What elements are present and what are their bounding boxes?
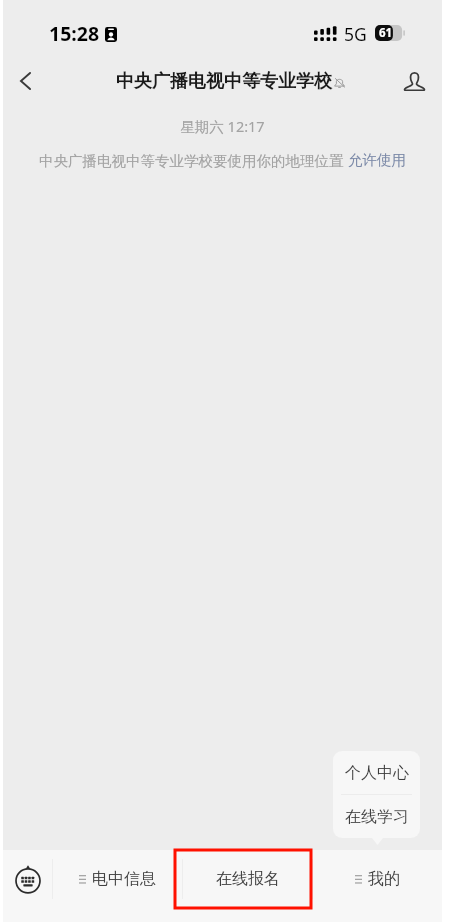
staticText: 61 bbox=[379, 25, 393, 41]
button[interactable]: 我的 bbox=[313, 850, 442, 908]
button[interactable]: 在线报名 bbox=[183, 850, 312, 908]
staticText: 个人中心 bbox=[345, 763, 409, 783]
staticText: 星期六 12:17 bbox=[3, 116, 442, 136]
button[interactable]: 在线学习 bbox=[333, 795, 420, 838]
staticText: 5G bbox=[344, 22, 367, 46]
staticText: 在线报名 bbox=[216, 869, 280, 889]
staticText: 电中信息 bbox=[92, 869, 156, 889]
button[interactable]: 个人中心 bbox=[333, 751, 420, 794]
button[interactable]: 允许使用 bbox=[348, 151, 406, 169]
staticText: 中央广播电视中等专业学校 bbox=[116, 70, 332, 93]
button[interactable]: Contact profile bbox=[394, 61, 434, 101]
staticText: 在线学习 bbox=[345, 807, 409, 827]
staticText: 我的 bbox=[368, 869, 400, 889]
button[interactable]: 电中信息 bbox=[53, 850, 182, 908]
button[interactable]: Keyboard bbox=[3, 850, 52, 908]
staticText: 中央广播电视中等专业学校要使用你的地理位置 bbox=[39, 150, 348, 170]
staticText: 15:28 bbox=[49, 20, 100, 47]
button[interactable]: Back bbox=[3, 59, 47, 103]
